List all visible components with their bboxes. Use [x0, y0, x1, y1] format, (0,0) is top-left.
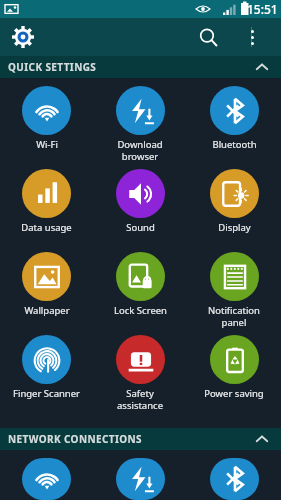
button[interactable]: NETWORK CONNECTIONS	[0, 428, 281, 450]
button[interactable]: Display	[187, 165, 281, 248]
staticText: QUICK SETTINGS	[8, 60, 97, 74]
staticText: Download browser	[117, 138, 163, 162]
staticText: Sound	[126, 221, 155, 234]
button[interactable]: Download browser	[93, 454, 187, 500]
staticText: Bluetooth	[212, 138, 257, 151]
button[interactable]: Wi-Fi	[0, 82, 93, 165]
staticText: 15:51	[247, 1, 278, 17]
button[interactable]: Search	[191, 20, 225, 54]
button[interactable]: Wi-Fi	[0, 454, 93, 500]
button[interactable]: Data usage	[0, 165, 93, 248]
staticText: Data usage	[21, 221, 72, 234]
button[interactable]: Finger Scanner	[0, 331, 93, 414]
button[interactable]: Bluetooth	[187, 82, 281, 165]
staticText: Safety assistance	[117, 387, 163, 411]
button[interactable]: QUICK SETTINGS	[0, 56, 281, 78]
button[interactable]: Power saving	[187, 331, 281, 414]
button[interactable]: Safety assistance	[93, 331, 187, 414]
staticText: Wallpaper	[24, 304, 70, 317]
staticText: Lock Screen	[114, 304, 167, 317]
button[interactable]: Notification panel	[187, 248, 281, 331]
button[interactable]: More options	[237, 22, 267, 52]
button[interactable]: Bluetooth	[187, 454, 281, 500]
staticText: NETWORK CONNECTIONS	[8, 432, 142, 446]
staticText: Power saving	[204, 387, 264, 400]
button[interactable]: Download browser	[93, 82, 187, 165]
staticText: Wi-Fi	[36, 138, 58, 151]
staticText: Finger Scanner	[13, 387, 80, 400]
staticText: Notification panel	[208, 304, 260, 328]
button[interactable]: Settings	[8, 22, 38, 52]
button[interactable]: Lock Screen	[93, 248, 187, 331]
button[interactable]: Sound	[93, 165, 187, 248]
staticText: Display	[218, 221, 251, 234]
button[interactable]: Wallpaper	[0, 248, 93, 331]
